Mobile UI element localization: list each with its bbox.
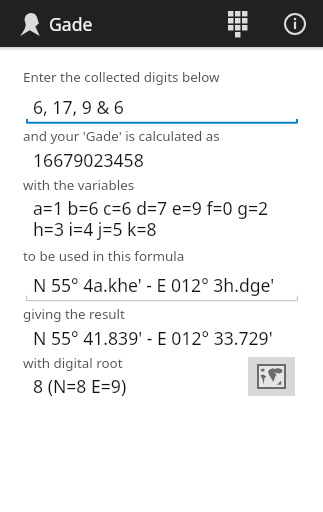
staticText: with digital root xyxy=(23,354,123,372)
staticText: with the variables xyxy=(23,176,135,194)
staticText: N 55° 41.839' - E 012° 33.729' xyxy=(33,326,273,350)
button[interactable]: Info xyxy=(272,0,317,47)
staticText: giving the result xyxy=(23,305,125,323)
staticText: Gade xyxy=(49,12,93,36)
button[interactable]: Show position on map xyxy=(248,357,295,396)
staticText: 16679023458 xyxy=(33,148,144,172)
staticText: h=3 i=4 j=5 k=8 xyxy=(33,217,157,241)
button[interactable]: 6, 17, 9 & 6 xyxy=(26,92,298,124)
button[interactable]: Gade, up xyxy=(12,0,48,47)
staticText: and your 'Gade' is calculated as xyxy=(23,127,220,145)
staticText: 8 (N=8 E=9) xyxy=(33,374,127,398)
staticText: Enter the collected digits below xyxy=(23,68,220,86)
staticText: N 55° 4a.khe' - E 012° 3h.dge' xyxy=(33,273,275,297)
staticText: 6, 17, 9 & 6 xyxy=(33,95,124,119)
button[interactable]: N 55° 4a.khe' - E 012° 3h.dge' xyxy=(26,270,298,302)
button[interactable]: Keypad xyxy=(214,0,262,47)
staticText: a=1 b=6 c=6 d=7 e=9 f=0 g=2 xyxy=(33,196,269,220)
staticText: to be used in this formula xyxy=(23,247,185,265)
